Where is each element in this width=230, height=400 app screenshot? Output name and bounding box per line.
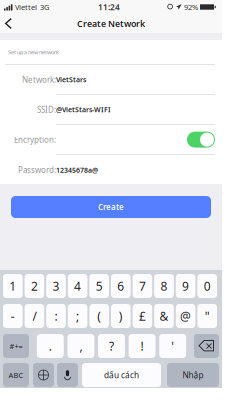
button[interactable]: !: [129, 334, 155, 358]
button[interactable]: .: [37, 334, 64, 358]
button[interactable]: &: [154, 304, 174, 328]
staticText: .: [49, 338, 52, 354]
staticText: 9: [182, 278, 189, 294]
button[interactable]: ;: [68, 304, 87, 328]
staticText: Set up a new network: [8, 48, 59, 56]
button[interactable]: :: [46, 304, 66, 328]
staticText: 6: [117, 278, 124, 294]
staticText: 8: [160, 278, 167, 294]
button[interactable]: Encryption toggle: [187, 126, 222, 154]
staticText: #+=: [9, 341, 22, 351]
button[interactable]: Dictate: [57, 363, 78, 387]
staticText: (: [97, 308, 101, 324]
staticText: 4: [74, 278, 81, 294]
staticText: dấu cách: [104, 369, 139, 381]
button[interactable]: Delete: [194, 334, 219, 358]
button[interactable]: 4: [68, 274, 87, 298]
staticText: £: [139, 308, 146, 324]
staticText: ": [205, 308, 210, 324]
button[interactable]: 7: [133, 274, 152, 298]
staticText: ': [171, 338, 174, 354]
staticText: ;: [76, 308, 79, 324]
staticText: /: [32, 308, 36, 324]
staticText: Network:: [22, 74, 56, 85]
staticText: Encryption:: [14, 134, 56, 145]
staticText: Password:: [18, 165, 56, 175]
button[interactable]: -: [3, 304, 23, 328]
staticText: SSID:: [37, 104, 56, 115]
button[interactable]: dấu cách: [82, 363, 161, 387]
button[interactable]: 1: [3, 274, 23, 298]
staticText: Viettel: [15, 2, 37, 12]
staticText: 3G: [40, 2, 49, 12]
staticText: :: [54, 308, 57, 324]
staticText: 5: [96, 278, 103, 294]
button[interactable]: Create: [11, 196, 211, 218]
staticText: 92%: [184, 2, 198, 12]
staticText: -: [11, 308, 15, 324]
button[interactable]: Back: [0, 14, 20, 33]
button[interactable]: 2: [25, 274, 44, 298]
button[interactable]: 3: [46, 274, 66, 298]
button[interactable]: ): [111, 304, 131, 328]
button[interactable]: /: [25, 304, 44, 328]
staticText: &: [159, 308, 168, 324]
staticText: ?: [109, 338, 114, 354]
button[interactable]: £: [133, 304, 152, 328]
button[interactable]: 8: [154, 274, 174, 298]
staticText: @VietStars-WIFI: [56, 105, 111, 114]
button[interactable]: ABC: [3, 363, 29, 387]
button[interactable]: Switch keyboard: [33, 363, 54, 387]
button[interactable]: 0: [197, 274, 217, 298]
button[interactable]: 6: [111, 274, 131, 298]
button[interactable]: (: [89, 304, 109, 328]
staticText: 1: [9, 278, 16, 294]
staticText: 3: [52, 278, 59, 294]
button[interactable]: ": [197, 304, 217, 328]
staticText: 7: [139, 278, 146, 294]
staticText: Create Network: [77, 17, 145, 29]
button[interactable]: ,: [67, 334, 94, 358]
button[interactable]: 5: [89, 274, 109, 298]
staticText: ,: [79, 338, 82, 354]
staticText: !: [141, 338, 144, 354]
staticText: 12345678a@: [56, 165, 98, 175]
button[interactable]: Nhập: [167, 363, 219, 387]
staticText: Create: [98, 202, 124, 212]
button[interactable]: 9: [176, 274, 195, 298]
staticText: ABC: [8, 370, 23, 380]
staticText: 0: [204, 278, 211, 294]
button[interactable]: @: [176, 304, 195, 328]
button[interactable]: ?: [98, 334, 125, 358]
staticText: VietStars: [56, 75, 86, 84]
button[interactable]: #+=: [3, 334, 29, 358]
staticText: Nhập: [182, 369, 203, 381]
staticText: ): [119, 308, 123, 324]
staticText: 11:24: [98, 1, 120, 13]
button[interactable]: ': [159, 334, 186, 358]
staticText: 2: [31, 278, 38, 294]
staticText: @: [180, 308, 191, 324]
